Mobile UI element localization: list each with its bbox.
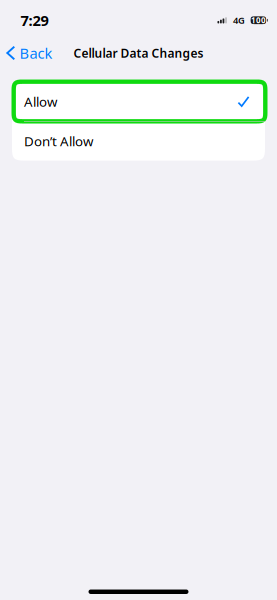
staticText: Allow	[24, 93, 57, 110]
staticText: Don’t Allow	[24, 132, 93, 150]
staticText: Back	[19, 43, 52, 63]
button[interactable]: Back	[0, 40, 60, 66]
staticText: 7:29	[20, 10, 48, 30]
button[interactable]: Don’t Allow	[12, 122, 265, 161]
button[interactable]: Allow	[12, 82, 265, 121]
staticText: 100	[251, 15, 266, 25]
staticText: Cellular Data Changes	[73, 45, 203, 61]
staticText: 4G	[233, 14, 245, 26]
